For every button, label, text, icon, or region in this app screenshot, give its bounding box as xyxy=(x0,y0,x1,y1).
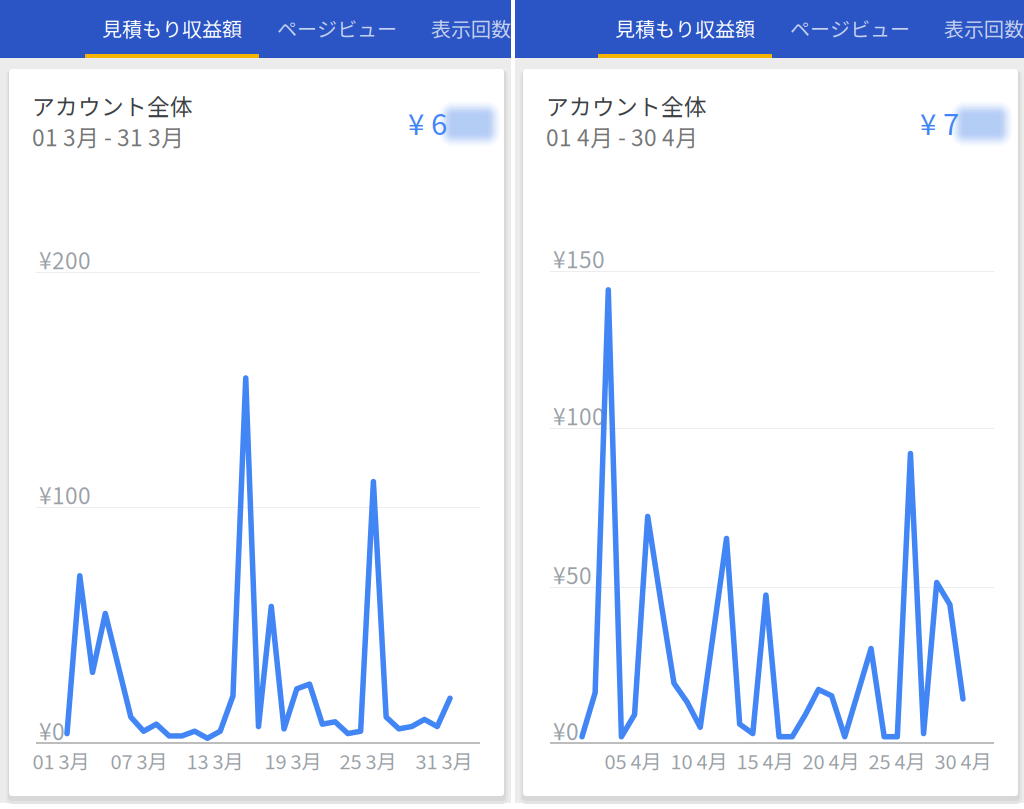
button[interactable]: 見積もり収益額 xyxy=(102,11,282,45)
staticText: ¥150 xyxy=(553,242,605,275)
button[interactable]: 表示回数 xyxy=(431,11,571,45)
staticText: ¥200 xyxy=(39,243,91,276)
staticText: ¥ 6 xyxy=(408,101,447,143)
staticText: 01 3月 - 31 3月 xyxy=(32,120,184,153)
staticText: 31 3月 xyxy=(415,746,472,775)
staticText: 13 3月 xyxy=(186,746,243,775)
staticText: 見積もり収益額 xyxy=(102,13,242,42)
staticText: ページビュー xyxy=(277,13,397,42)
staticText: ¥ 7 xyxy=(920,101,959,143)
staticText: 05 4月 xyxy=(604,746,661,775)
button[interactable]: 表示回数 xyxy=(944,11,1024,45)
staticText: 25 4月 xyxy=(868,746,925,775)
button[interactable]: ページビュー xyxy=(277,11,437,45)
staticText: ページビュー xyxy=(790,13,910,42)
staticText: 10 4月 xyxy=(670,746,727,775)
staticText: 01 3月 xyxy=(32,746,89,775)
staticText: 19 3月 xyxy=(264,746,321,775)
staticText: 01 4月 - 30 4月 xyxy=(546,120,698,153)
staticText: 見積もり収益額 xyxy=(615,13,755,42)
staticText: 30 4月 xyxy=(934,746,991,775)
staticText: アカウント全体 xyxy=(546,89,707,122)
staticText: ¥50 xyxy=(553,558,592,591)
button[interactable]: 見積もり収益額 xyxy=(615,11,795,45)
staticText: 20 4月 xyxy=(802,746,859,775)
staticText: 表示回数 xyxy=(944,13,1024,42)
staticText: ¥0 xyxy=(39,714,65,747)
staticText: ¥100 xyxy=(553,399,605,432)
button[interactable]: ページビュー xyxy=(790,11,950,45)
staticText: ¥0 xyxy=(553,714,579,747)
staticText: 15 4月 xyxy=(736,746,793,775)
staticText: 07 3月 xyxy=(110,746,167,775)
staticText: 表示回数 xyxy=(431,13,511,42)
staticText: 25 3月 xyxy=(339,746,396,775)
staticText: ¥100 xyxy=(39,478,91,511)
staticText: アカウント全体 xyxy=(32,89,193,122)
